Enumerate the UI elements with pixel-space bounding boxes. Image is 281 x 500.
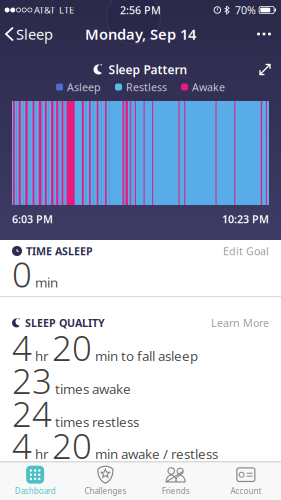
button[interactable]: Friends (140, 466, 211, 496)
staticText: Sleep Pattern (108, 61, 187, 77)
staticText: times awake (55, 380, 131, 398)
staticText: 4 (12, 422, 32, 468)
staticText: 2:56 PM (120, 3, 161, 17)
staticText: TIME ASLEEP (26, 244, 93, 258)
staticText: Awake (192, 80, 225, 94)
button[interactable]: Challenges (70, 466, 140, 496)
staticText: 70% (229, 3, 259, 17)
staticText: min awake / restless (95, 445, 218, 463)
button[interactable]: Learn More (211, 316, 269, 330)
staticText: 10:23 PM (222, 212, 269, 226)
staticText: Dashboard (15, 486, 56, 496)
staticText: Learn More (211, 316, 269, 330)
button[interactable] (257, 32, 281, 35)
button[interactable] (259, 63, 281, 75)
staticText: 23 (12, 357, 52, 403)
staticText: Restless (126, 80, 167, 94)
staticText: 20 (52, 324, 92, 370)
staticText: Account (230, 486, 261, 496)
staticText: min to fall asleep (95, 347, 198, 365)
staticText: SLEEP QUALITY (25, 316, 105, 330)
button[interactable]: Account (211, 466, 281, 496)
staticText: 6:03 PM (12, 212, 53, 226)
staticText: min (35, 273, 58, 291)
staticText: Asleep (67, 80, 101, 94)
staticText: times restless (55, 413, 139, 431)
staticText: 24 (12, 390, 52, 436)
staticText: Friends (162, 486, 190, 496)
button[interactable]: Sleep (0, 24, 53, 44)
staticText: Edit Goal (223, 244, 269, 258)
button[interactable]: Dashboard (0, 466, 70, 496)
staticText: Challenges (84, 486, 126, 496)
staticText: hr (35, 445, 49, 463)
staticText: AT&T LTE (32, 4, 74, 16)
staticText: 20 (52, 422, 92, 468)
staticText: Sleep (16, 24, 53, 44)
staticText: 4 (12, 324, 32, 370)
staticText: Monday, Sep 14 (85, 24, 196, 44)
staticText: hr (35, 347, 49, 365)
button[interactable]: Edit Goal (223, 244, 269, 258)
staticText: 0 (12, 251, 32, 297)
